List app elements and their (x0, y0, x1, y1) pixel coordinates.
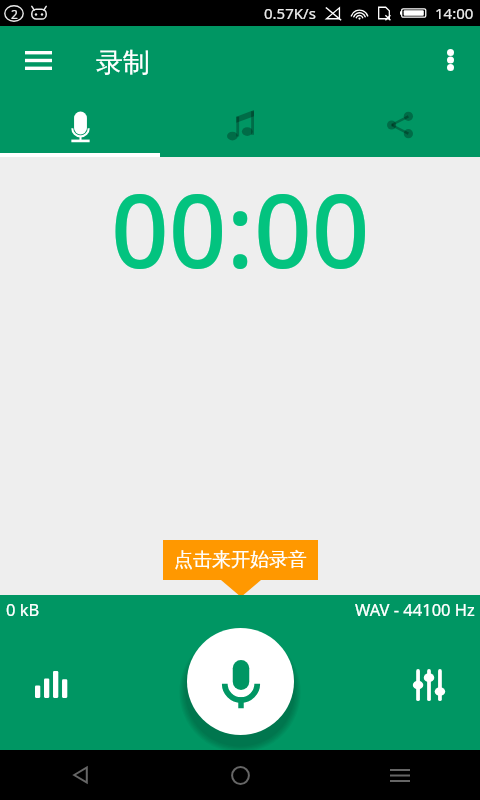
button[interactable]: Share (320, 93, 480, 157)
button[interactable]: Recents (320, 750, 480, 800)
button[interactable]: Start recording (187, 628, 294, 735)
button[interactable]: Settings (404, 662, 453, 708)
button[interactable]: Home (160, 750, 320, 800)
staticText: 2 (11, 6, 18, 22)
staticText: 录制 (96, 46, 150, 80)
staticText: 0.57K/s (264, 3, 316, 23)
button[interactable]: More options (428, 38, 472, 82)
button[interactable]: Record (0, 93, 160, 157)
staticText: 14:00 (435, 3, 474, 23)
button[interactable]: Back (0, 750, 160, 800)
button[interactable]: 点击来开始录音 (163, 540, 318, 580)
staticText: 00:00 (111, 160, 370, 298)
staticText: 点击来开始录音 (174, 548, 307, 572)
button[interactable]: Recordings (160, 93, 320, 157)
button[interactable]: Menu (16, 38, 60, 82)
button[interactable]: Waveform (27, 661, 76, 707)
staticText: WAV - 44100 Hz (355, 598, 475, 620)
staticText: 0 kB (6, 598, 40, 620)
